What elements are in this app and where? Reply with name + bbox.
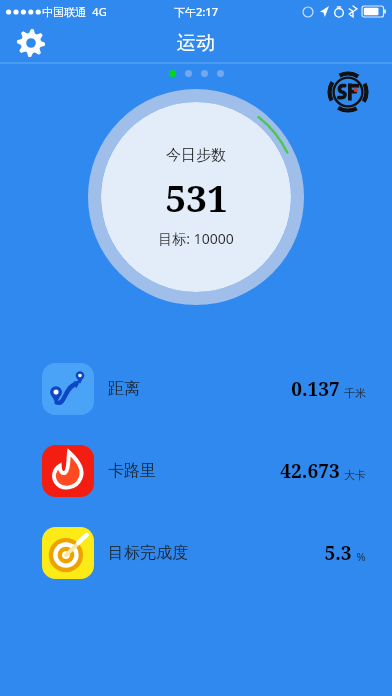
staticText: 运动 (177, 31, 215, 55)
staticText: 0.137 (291, 376, 340, 402)
button[interactable]: 目标完成度 (0, 525, 392, 581)
staticText: 卡路里 (108, 461, 156, 481)
button[interactable]: 距离 (0, 361, 392, 417)
staticText: 目标: 10000 (158, 229, 234, 248)
staticText: % (356, 549, 366, 564)
staticText: 大卡 (344, 468, 366, 482)
staticText: 下午2:17 (174, 4, 218, 19)
staticText: 目标完成度 (108, 543, 188, 563)
staticText: 4G (92, 4, 107, 19)
staticText: 42.673 (280, 458, 340, 484)
staticText: 千米 (344, 386, 366, 400)
staticText: 今日步数 (166, 146, 226, 165)
button[interactable]: 卡路里 (0, 443, 392, 499)
staticText: 5.3 (324, 540, 352, 566)
staticText: 距离 (108, 379, 140, 399)
button[interactable]: SF Express (326, 70, 370, 114)
staticText: 531 (165, 172, 228, 222)
button[interactable]: Settings (12, 24, 50, 62)
staticText: 中国联通 (42, 5, 86, 19)
